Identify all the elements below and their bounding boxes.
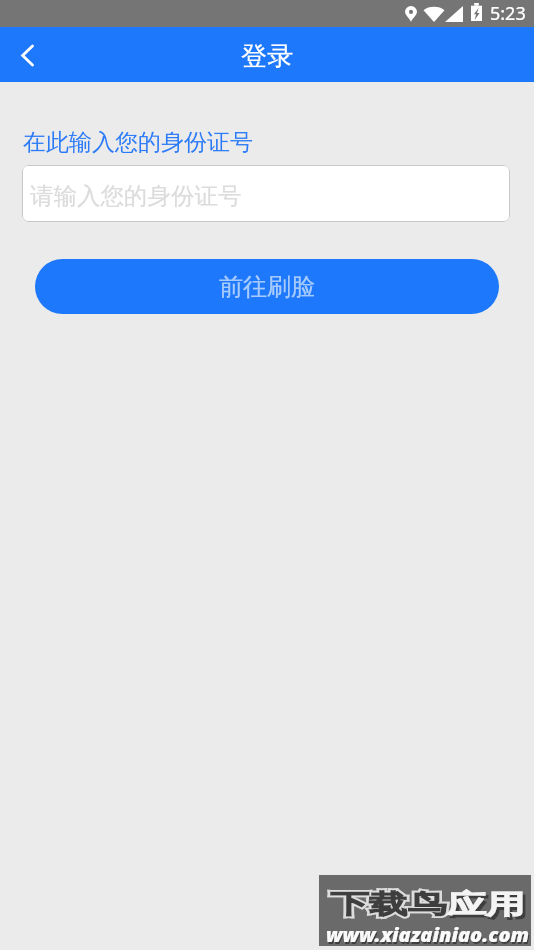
staticText: 请输入您的身份证号 bbox=[30, 181, 242, 211]
button[interactable]: 请输入您的身份证号 bbox=[22, 165, 510, 222]
button[interactable]: 前往刷脸 bbox=[35, 259, 499, 314]
button[interactable]: Back bbox=[0, 28, 54, 82]
staticText: 前往刷脸 bbox=[219, 272, 315, 302]
staticText: 应用 bbox=[447, 888, 525, 921]
staticText: 在此输入您的身份证号 bbox=[23, 128, 253, 157]
staticText: www.xiazainiao.com bbox=[326, 921, 530, 948]
staticText: 应用 bbox=[450, 891, 528, 924]
staticText: 下载鸟 bbox=[330, 888, 447, 921]
staticText: 登录 bbox=[241, 40, 293, 73]
staticText: www.xiazainiao.com bbox=[327, 923, 531, 950]
staticText: 下载鸟 bbox=[330, 888, 447, 921]
staticText: 5:23 bbox=[490, 1, 526, 26]
